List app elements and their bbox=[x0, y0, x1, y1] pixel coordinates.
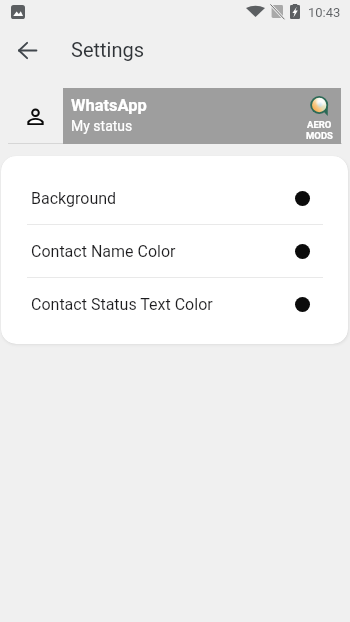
staticText: Contact Status Text Color bbox=[31, 295, 213, 314]
button[interactable]: Back bbox=[9, 32, 45, 68]
button[interactable]: WhatsApp bbox=[63, 88, 341, 144]
staticText: MODS bbox=[306, 130, 333, 141]
staticText: Contact Name Color bbox=[31, 242, 176, 261]
button[interactable]: Background bbox=[1, 172, 348, 224]
staticText: Background bbox=[31, 189, 117, 208]
staticText: Settings bbox=[71, 38, 145, 61]
staticText: WhatsApp bbox=[71, 96, 147, 115]
staticText: My status bbox=[71, 118, 133, 134]
staticText: AERO bbox=[307, 119, 332, 130]
staticText: 10:43 bbox=[308, 5, 341, 20]
button[interactable]: Contact Status Text Color bbox=[1, 278, 348, 330]
button[interactable]: Contact Name Color bbox=[1, 225, 348, 277]
